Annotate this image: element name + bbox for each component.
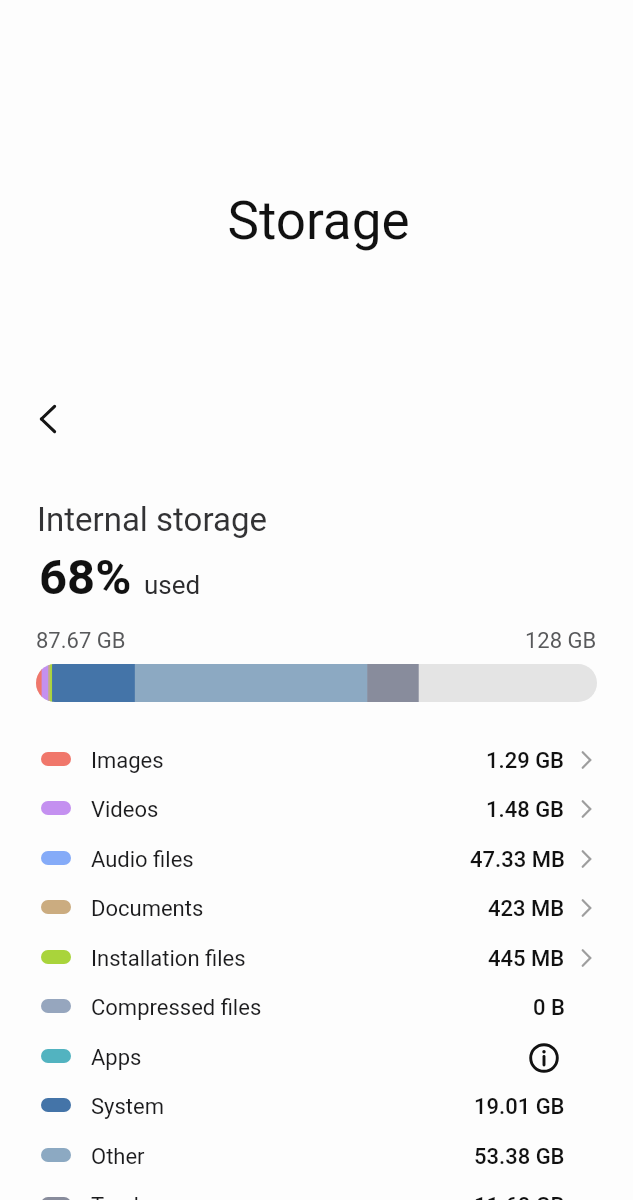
staticText: Storage <box>227 190 410 252</box>
staticText: Images <box>91 748 164 774</box>
staticText: 11.68 GB <box>474 1193 565 1200</box>
staticText: Documents <box>91 896 204 922</box>
staticText: 128 GB <box>525 628 597 654</box>
button[interactable]: Audio files <box>0 835 633 885</box>
staticText: Audio files <box>91 847 194 873</box>
button[interactable]: System <box>0 1082 633 1132</box>
button[interactable]: Trash <box>0 1181 633 1200</box>
button[interactable]: App info <box>524 1038 564 1078</box>
staticText: Videos <box>91 797 159 823</box>
staticText: Internal storage <box>37 500 267 539</box>
button[interactable]: Images <box>0 736 633 786</box>
staticText: 1.48 GB <box>486 797 565 823</box>
staticText: used <box>144 570 201 600</box>
staticText: 87.67 GB <box>36 628 126 654</box>
staticText: 0 B <box>533 995 565 1021</box>
staticText: 19.01 GB <box>474 1094 565 1120</box>
staticText: 68% <box>39 549 132 606</box>
staticText: 53.38 GB <box>474 1144 565 1170</box>
button[interactable]: Installation files <box>0 934 633 984</box>
button[interactable]: Compressed files <box>0 983 633 1033</box>
staticText: Other <box>91 1144 145 1170</box>
staticText: 1.29 GB <box>486 748 565 774</box>
staticText: Installation files <box>91 946 246 972</box>
button[interactable]: Other <box>0 1132 633 1182</box>
staticText: 47.33 MB <box>470 847 565 873</box>
staticText: Apps <box>91 1045 142 1071</box>
staticText: 445 MB <box>488 946 565 972</box>
button[interactable]: Documents <box>0 884 633 934</box>
button[interactable]: Apps <box>0 1033 633 1083</box>
staticText: Trash <box>91 1193 146 1200</box>
staticText: 423 MB <box>488 896 565 922</box>
button[interactable]: Back <box>13 391 83 446</box>
staticText: Compressed files <box>91 995 262 1021</box>
button[interactable]: Videos <box>0 785 633 835</box>
staticText: System <box>91 1094 164 1120</box>
